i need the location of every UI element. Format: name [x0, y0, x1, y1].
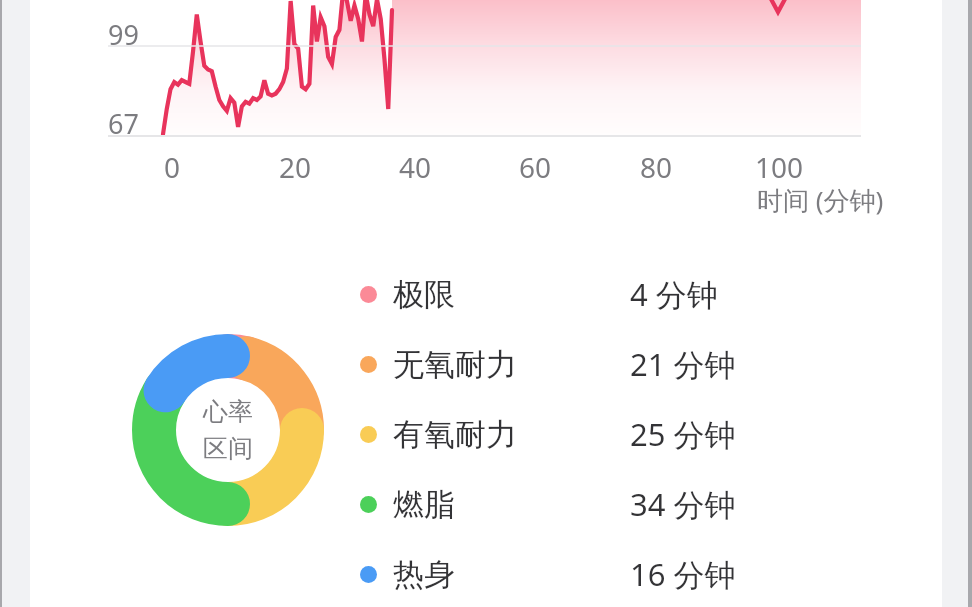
- staticText: 0: [164, 148, 181, 186]
- staticText: 心率: [203, 396, 253, 427]
- staticText: 34 分钟: [630, 483, 736, 525]
- button[interactable]: 热身: [360, 544, 800, 604]
- staticText: 4 分钟: [630, 273, 718, 315]
- staticText: 40: [399, 148, 432, 186]
- staticText: 20: [279, 148, 312, 186]
- staticText: 无氧耐力: [393, 345, 517, 384]
- staticText: 有氧耐力: [393, 415, 517, 454]
- staticText: 21 分钟: [630, 343, 736, 385]
- staticText: 时间 (分钟): [757, 182, 884, 218]
- button[interactable]: 燃脂: [360, 474, 800, 534]
- button[interactable]: 心率区间: [132, 334, 324, 526]
- staticText: 极限: [393, 275, 455, 314]
- staticText: 区间: [203, 433, 253, 464]
- button[interactable]: 有氧耐力: [360, 404, 800, 464]
- staticText: 99: [108, 16, 139, 53]
- staticText: 100: [755, 148, 804, 186]
- staticText: 燃脂: [393, 485, 455, 524]
- staticText: 80: [640, 148, 673, 186]
- staticText: 60: [519, 148, 552, 186]
- staticText: 67: [108, 105, 139, 142]
- staticText: 热身: [393, 555, 455, 594]
- staticText: 25 分钟: [630, 413, 736, 455]
- button[interactable]: 极限: [360, 264, 800, 324]
- button[interactable]: 无氧耐力: [360, 334, 800, 394]
- staticText: 16 分钟: [630, 553, 736, 595]
